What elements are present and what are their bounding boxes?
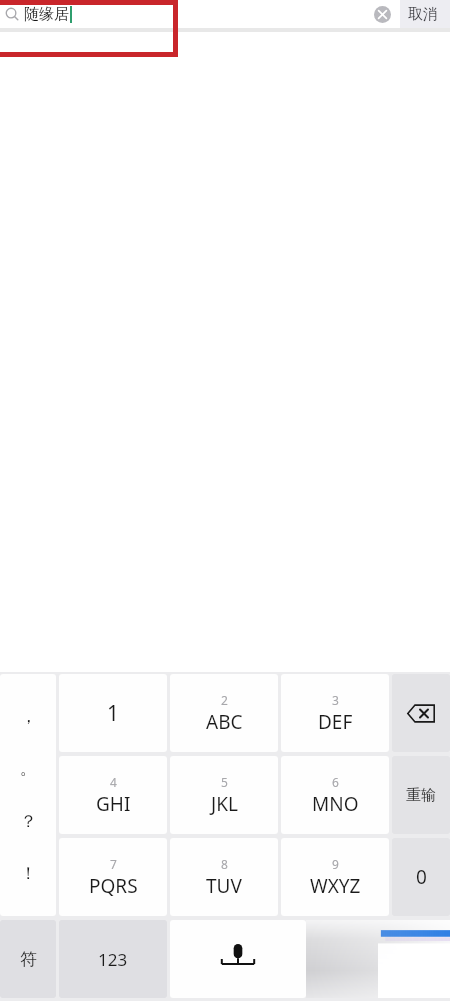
button[interactable]: 4: [59, 756, 167, 834]
button[interactable]: 1: [59, 674, 167, 752]
button[interactable]: 7: [59, 838, 167, 916]
button[interactable]: 符: [0, 920, 56, 998]
staticText: PQRS: [89, 873, 138, 899]
button[interactable]: 0: [392, 838, 450, 916]
staticText: DEF: [318, 709, 353, 735]
staticText: JKL: [211, 791, 238, 817]
button[interactable]: 取消: [400, 0, 450, 28]
button[interactable]: 5: [170, 756, 278, 834]
staticText: MNO: [312, 791, 359, 817]
staticText: 123: [98, 948, 128, 971]
staticText: ，: [20, 706, 37, 727]
button[interactable]: 123: [59, 920, 167, 998]
staticText: 2: [221, 692, 228, 708]
staticText: GHI: [96, 791, 131, 817]
staticText: 随缘居: [24, 5, 69, 24]
staticText: 4: [110, 774, 117, 790]
staticText: WXYZ: [310, 873, 361, 899]
button[interactable]: 2: [170, 674, 278, 752]
button[interactable]: 3: [281, 674, 389, 752]
staticText: TUV: [206, 873, 242, 899]
staticText: 1: [107, 699, 120, 728]
staticText: 。: [20, 758, 37, 779]
staticText: 5: [221, 774, 228, 790]
button[interactable]: 8: [170, 838, 278, 916]
button[interactable]: Enter: [306, 920, 450, 998]
staticText: 符: [20, 949, 37, 970]
button[interactable]: Clear text: [371, 3, 393, 25]
button[interactable]: 6: [281, 756, 389, 834]
staticText: 6: [332, 774, 339, 790]
staticText: 3: [332, 692, 339, 708]
button[interactable]: Voice input: [170, 920, 306, 998]
button[interactable]: 9: [281, 838, 389, 916]
staticText: ABC: [206, 709, 243, 735]
staticText: ？: [20, 811, 37, 832]
button[interactable]: Punctuation: [0, 674, 56, 916]
button[interactable]: Delete: [392, 674, 450, 752]
staticText: 取消: [408, 5, 438, 24]
staticText: ！: [20, 863, 37, 884]
staticText: 8: [221, 856, 228, 872]
button[interactable]: 随缘居: [0, 0, 400, 28]
staticText: 重输: [406, 786, 436, 805]
staticText: 0: [416, 864, 427, 890]
staticText: 7: [110, 856, 117, 872]
button[interactable]: 重输: [392, 756, 450, 834]
staticText: 9: [332, 856, 339, 872]
